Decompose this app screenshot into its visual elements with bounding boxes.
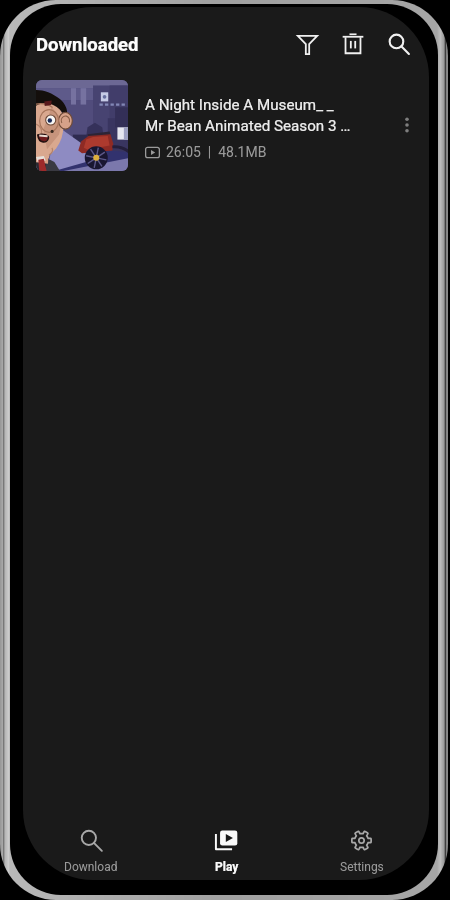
- staticText: Download: [64, 860, 118, 874]
- button[interactable]: More options: [389, 107, 425, 143]
- button[interactable]: Download: [23, 805, 159, 880]
- button[interactable]: Delete: [330, 21, 376, 67]
- button[interactable]: Settings: [294, 805, 429, 880]
- staticText: Downloaded: [36, 34, 139, 56]
- staticText: 26:05 | 48.1MB: [166, 144, 267, 160]
- staticText: Play: [215, 860, 239, 874]
- button[interactable]: A Night Inside A Museum_ _ Mr Bean Anima…: [23, 80, 429, 184]
- staticText: Settings: [340, 860, 384, 874]
- button[interactable]: Play: [159, 805, 294, 880]
- button[interactable]: Search: [376, 21, 422, 67]
- button[interactable]: Filter: [284, 21, 330, 67]
- staticText: A Night Inside A Museum_ _ Mr Bean Anima…: [145, 96, 351, 134]
